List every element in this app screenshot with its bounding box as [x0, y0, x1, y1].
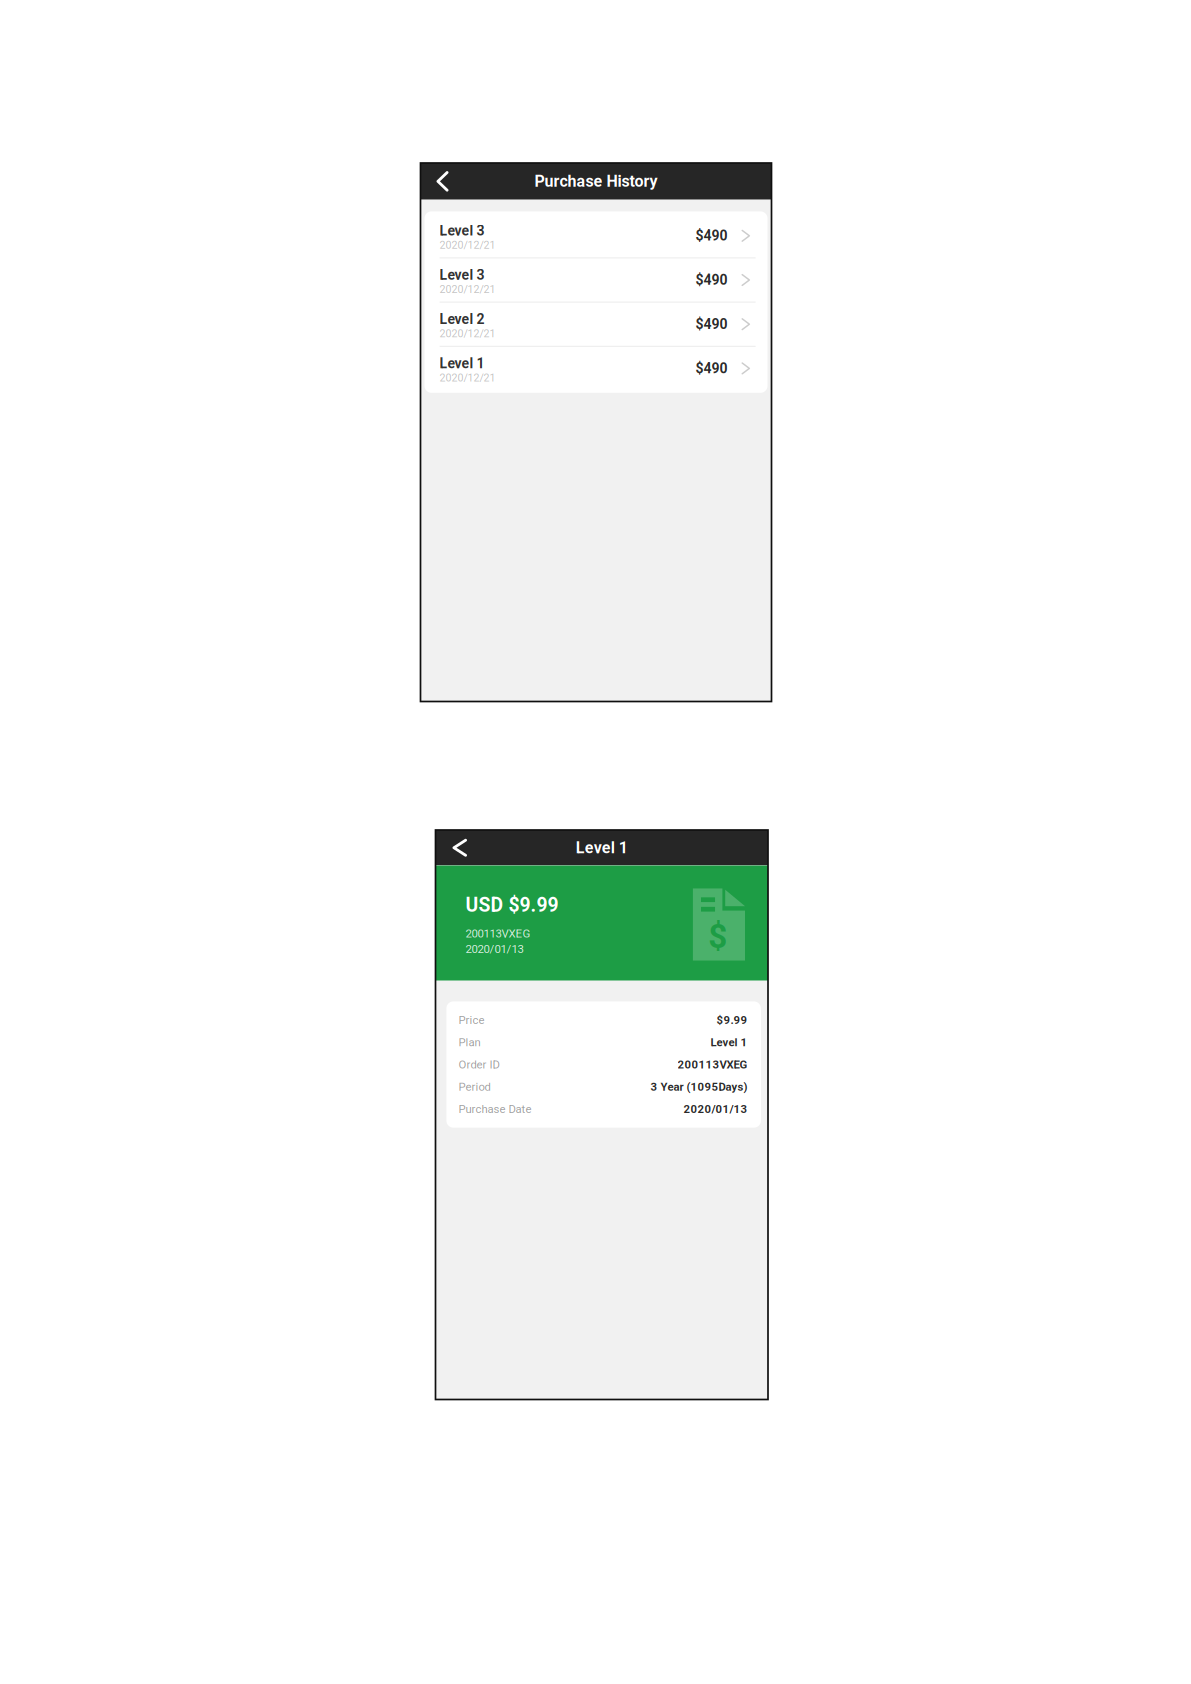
staticText: Level 1 — [439, 355, 484, 371]
staticText: 3 Year (1095Days) — [651, 1080, 748, 1093]
staticText: $ — [708, 917, 727, 956]
staticText: $490 — [696, 272, 728, 288]
button[interactable]: Level 3 — [424, 214, 767, 257]
staticText: USD $9.99 — [465, 894, 558, 916]
staticText: 200113VXEG — [678, 1058, 748, 1071]
button[interactable]: Level 1 — [424, 347, 767, 390]
staticText: Plan — [459, 1036, 481, 1049]
staticText: 200113VXEG — [465, 927, 530, 940]
staticText: 2020/01/13 — [684, 1102, 748, 1116]
staticText: 2020/12/21 — [439, 327, 495, 340]
staticText: Purchase Date — [459, 1102, 532, 1116]
staticText: 2020/01/13 — [465, 942, 523, 956]
staticText: $490 — [696, 228, 728, 244]
button[interactable]: Back — [420, 163, 460, 200]
button[interactable]: Back — [435, 830, 479, 865]
staticText: Level 1 — [576, 838, 628, 857]
staticText: 2020/12/21 — [439, 372, 495, 384]
staticText: $9.99 — [717, 1013, 748, 1027]
staticText: 2020/12/21 — [439, 283, 495, 296]
staticText: Order ID — [459, 1058, 500, 1071]
staticText: Period — [459, 1080, 491, 1093]
staticText: Level 3 — [439, 267, 484, 283]
staticText: Level 2 — [439, 311, 484, 327]
staticText: Level 1 — [711, 1036, 748, 1049]
staticText: Level 3 — [439, 222, 484, 239]
staticText: Purchase History — [534, 172, 657, 191]
staticText: $490 — [696, 316, 728, 332]
staticText: 2020/12/21 — [439, 239, 495, 251]
staticText: $490 — [696, 360, 728, 377]
button[interactable]: Level 2 — [424, 303, 767, 346]
button[interactable]: Level 3 — [424, 258, 767, 302]
staticText: Price — [459, 1013, 485, 1027]
